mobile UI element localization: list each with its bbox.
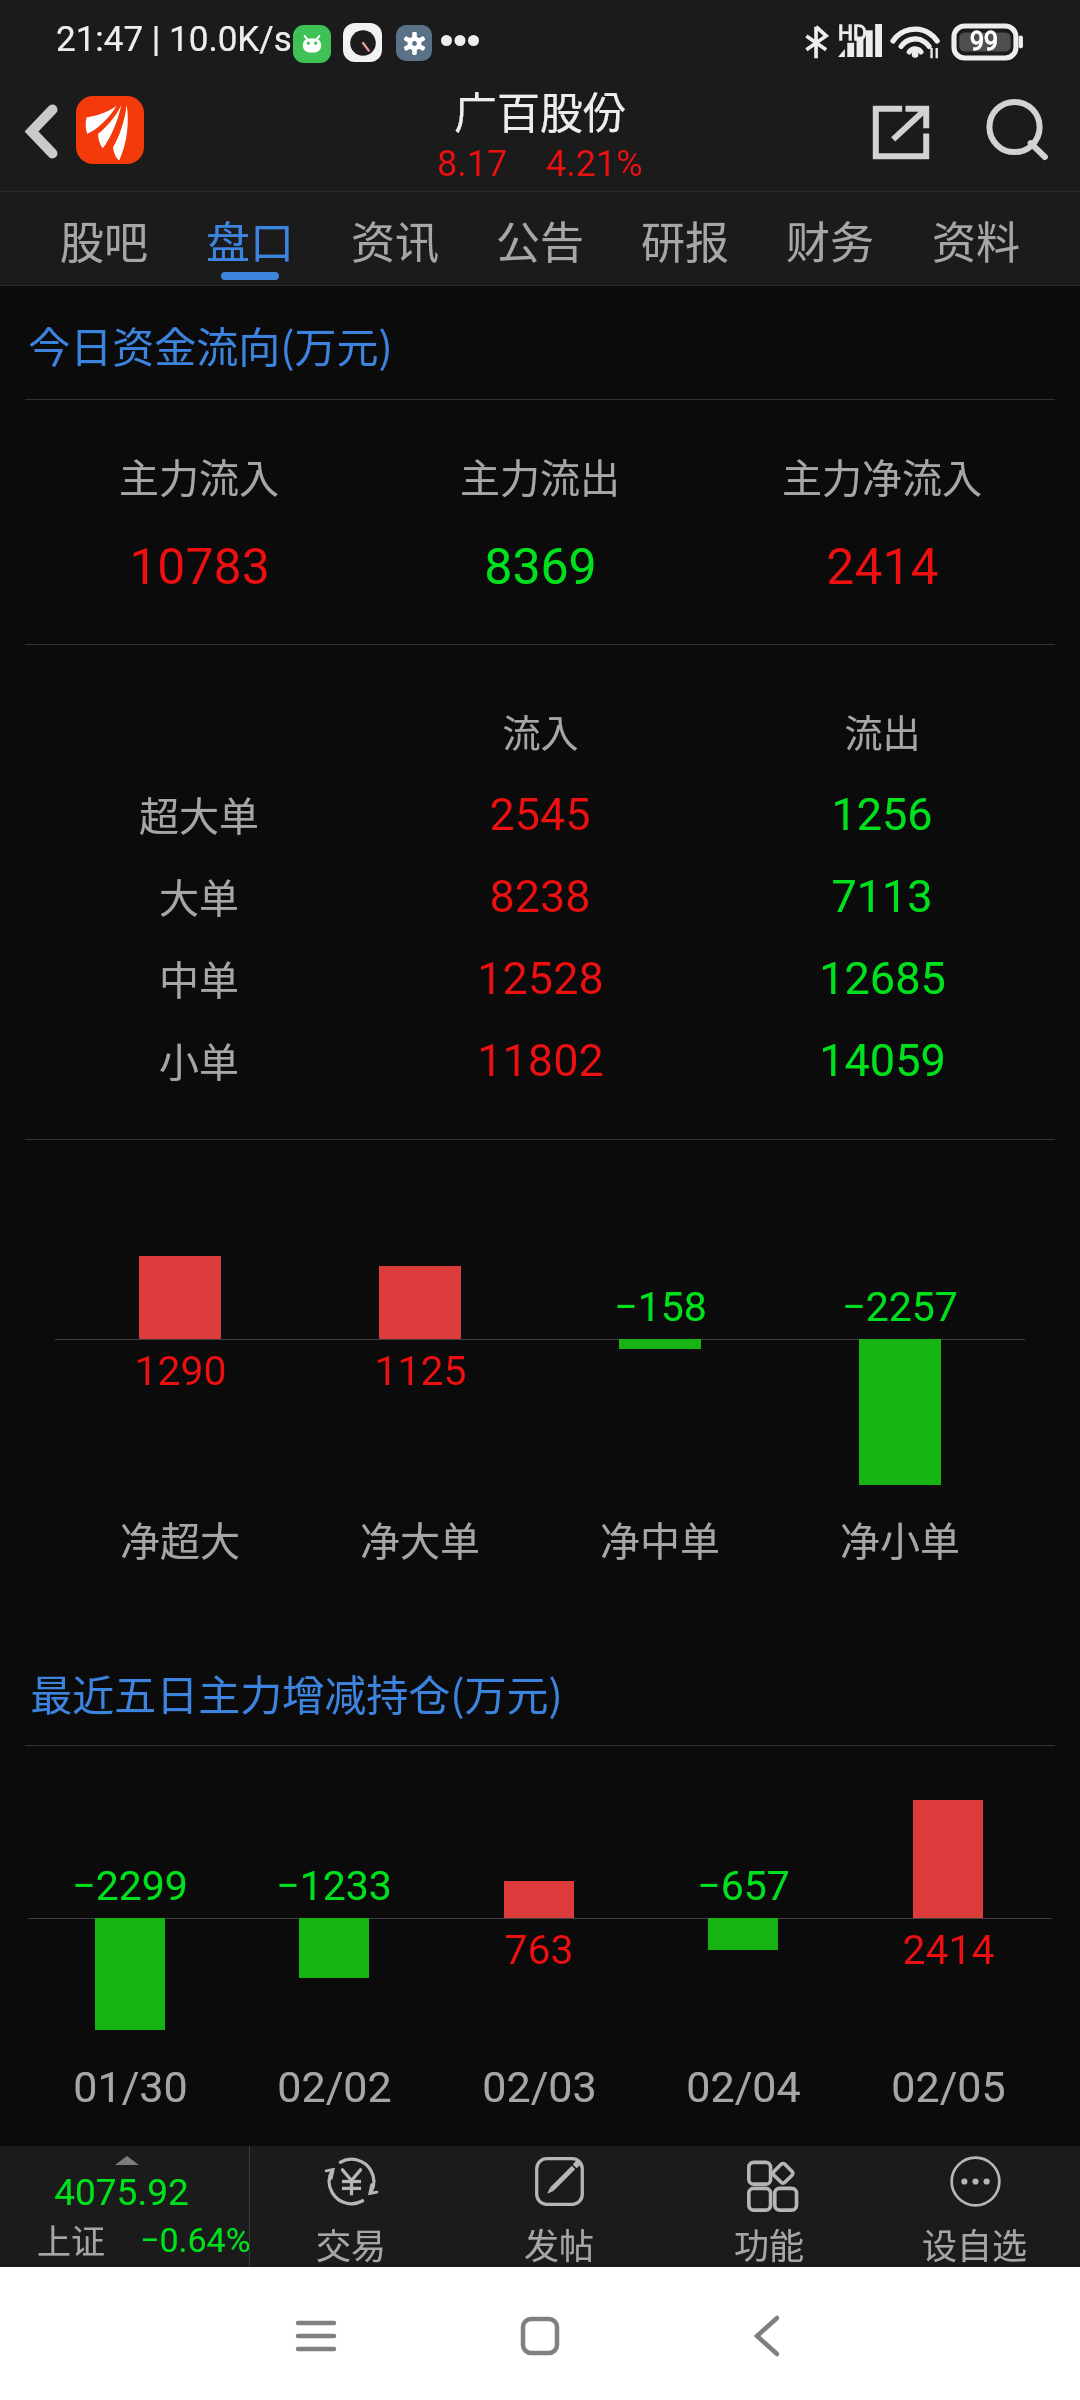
button[interactable]: 资料	[904, 191, 1048, 286]
staticText: 4.21%	[546, 143, 643, 185]
staticText: 发帖	[524, 2218, 595, 2269]
staticText: 2414	[902, 1926, 995, 1974]
staticText: 02/03	[482, 2062, 597, 2112]
staticText: 功能	[734, 2218, 805, 2269]
button[interactable]: 功能	[669, 2146, 869, 2267]
staticText: 8.17	[437, 143, 508, 185]
staticText: 中单	[159, 949, 239, 1007]
button[interactable]: Home	[490, 2286, 590, 2386]
button[interactable]: 设自选	[875, 2146, 1075, 2267]
staticText: 99	[970, 27, 999, 56]
staticText: 小单	[159, 1031, 239, 1089]
button[interactable]: 交易	[251, 2146, 451, 2267]
staticText: 2545	[489, 788, 591, 841]
staticText: 财务	[786, 208, 874, 272]
staticText: 主力流出	[460, 447, 620, 505]
staticText: 01/30	[73, 2062, 188, 2112]
staticText: 12685	[819, 952, 946, 1005]
staticText: 02/05	[891, 2062, 1006, 2112]
button[interactable]: Search	[974, 87, 1060, 173]
button[interactable]: 股吧	[32, 191, 176, 286]
button[interactable]: Shanghai Composite index	[0, 2146, 249, 2267]
staticText: 盘口	[206, 208, 294, 272]
staticText: 14059	[819, 1034, 946, 1087]
staticText: 10783	[129, 538, 270, 597]
button[interactable]: Eastmoney	[76, 96, 144, 164]
staticText: −1233	[276, 1862, 392, 1910]
staticText: 大单	[159, 867, 239, 925]
staticText: 资料	[932, 208, 1020, 272]
staticText: 8238	[489, 870, 591, 923]
button[interactable]: 研报	[613, 191, 757, 286]
button[interactable]: 公告	[468, 191, 612, 286]
staticText: 1125	[374, 1347, 467, 1395]
staticText: −0.64%	[140, 2220, 251, 2260]
staticText: 净大单	[360, 1510, 480, 1568]
staticText: 净小单	[840, 1510, 960, 1568]
staticText: 流入	[502, 703, 579, 758]
staticText: 11802	[477, 1034, 604, 1087]
staticText: 21:47 | 10.0K/s	[56, 19, 292, 60]
staticText: 1256	[831, 788, 933, 841]
staticText: 流出	[844, 703, 921, 758]
staticText: 8369	[484, 538, 597, 597]
staticText: 1290	[134, 1347, 227, 1395]
staticText: HD	[838, 21, 867, 46]
button[interactable]: 发帖	[459, 2146, 659, 2267]
staticText: 763	[504, 1926, 574, 1974]
staticText: 02/02	[277, 2062, 392, 2112]
staticText: 12528	[477, 952, 604, 1005]
staticText: 广百股份	[454, 79, 626, 141]
staticText: 2414	[826, 538, 939, 597]
staticText: 主力流入	[119, 447, 279, 505]
staticText: 净中单	[600, 1510, 720, 1568]
button[interactable]: 盘口	[178, 191, 322, 286]
button[interactable]: Back	[7, 96, 77, 166]
staticText: 交易	[316, 2218, 387, 2269]
staticText: 资讯	[351, 208, 439, 272]
staticText: 股吧	[60, 208, 148, 272]
staticText: 今日资金流向(万元)	[28, 314, 393, 375]
staticText: 02/04	[686, 2062, 801, 2112]
staticText: 7113	[831, 870, 933, 923]
staticText: −657	[697, 1862, 790, 1910]
staticText: −2299	[72, 1862, 188, 1910]
button[interactable]: 财务	[758, 191, 902, 286]
staticText: 上证	[37, 2215, 105, 2264]
button[interactable]: 资讯	[323, 191, 467, 286]
staticText: 超大单	[139, 785, 259, 843]
button[interactable]: Back	[717, 2286, 817, 2386]
staticText: 公告	[496, 208, 584, 272]
staticText: 主力净流入	[782, 447, 982, 505]
staticText: 净超大	[120, 1510, 240, 1568]
button[interactable]: Recents	[266, 2286, 366, 2386]
staticText: −2257	[842, 1283, 958, 1331]
button[interactable]: Share	[858, 89, 944, 175]
staticText: 4075.92	[0, 2171, 246, 2214]
staticText: −158	[614, 1283, 707, 1331]
staticText: 研报	[641, 208, 729, 272]
staticText: 设自选	[922, 2218, 1028, 2269]
staticText: 最近五日主力增减持仓(万元)	[30, 1662, 563, 1723]
